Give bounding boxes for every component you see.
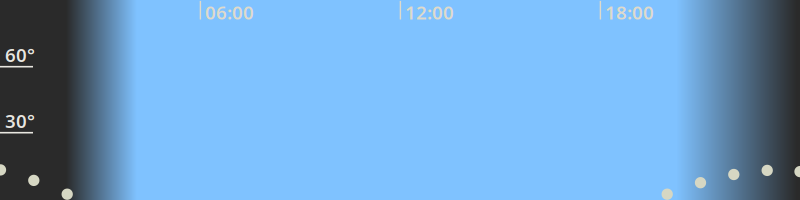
staticText: 60° [5, 42, 35, 67]
staticText: 12:00 [405, 0, 454, 25]
staticText: 06:00 [205, 0, 254, 25]
staticText: 30° [5, 108, 35, 133]
staticText: 18:00 [605, 0, 654, 25]
